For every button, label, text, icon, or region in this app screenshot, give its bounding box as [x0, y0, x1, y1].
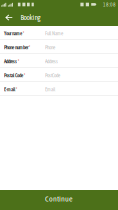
- staticText: *: [18, 58, 20, 64]
- staticText: Phone number: [4, 44, 28, 50]
- button[interactable]: Postal Code: [0, 68, 118, 82]
- button[interactable]: Continue: [0, 190, 118, 210]
- staticText: 18:08: [103, 1, 116, 7]
- staticText: Address: [4, 58, 17, 64]
- button[interactable]: Back: [0, 9, 17, 26]
- staticText: Phone: [45, 44, 55, 50]
- staticText: PostCode: [45, 72, 60, 78]
- staticText: *: [24, 72, 26, 78]
- staticText: Your name: [4, 30, 22, 36]
- button[interactable]: E-mail: [0, 82, 118, 96]
- staticText: Continue: [45, 194, 73, 203]
- button[interactable]: Your name: [0, 26, 118, 40]
- staticText: Full Name: [45, 30, 63, 36]
- staticText: Booking: [20, 13, 40, 22]
- button[interactable]: Address: [0, 54, 118, 68]
- staticText: Address: [45, 58, 58, 64]
- staticText: *: [23, 30, 25, 36]
- staticText: E-mail: [4, 86, 15, 92]
- staticText: Email: [45, 86, 55, 92]
- staticText: *: [16, 86, 18, 92]
- button[interactable]: Phone number: [0, 40, 118, 54]
- staticText: Postal Code: [4, 72, 23, 78]
- staticText: *: [29, 44, 31, 50]
